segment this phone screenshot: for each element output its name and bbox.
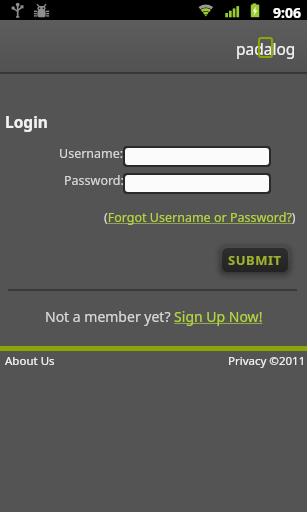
button[interactable] xyxy=(125,175,269,192)
button[interactable]: (Forgot Username or Password?) xyxy=(104,209,296,226)
button[interactable] xyxy=(125,148,269,165)
staticText: Login xyxy=(5,111,48,132)
staticText: 9:06 xyxy=(273,3,301,22)
button[interactable]: About Us xyxy=(5,353,55,369)
button[interactable]: Not a member yet? Sign Up Now! xyxy=(45,307,263,326)
button[interactable]: Privacy ©2011 xyxy=(228,353,306,369)
staticText: padalog xyxy=(236,38,296,59)
staticText: Username: xyxy=(59,145,124,162)
staticText: SUBMIT xyxy=(228,251,282,269)
button[interactable]: SUBMIT xyxy=(222,248,288,272)
staticText: Password: xyxy=(64,172,124,189)
